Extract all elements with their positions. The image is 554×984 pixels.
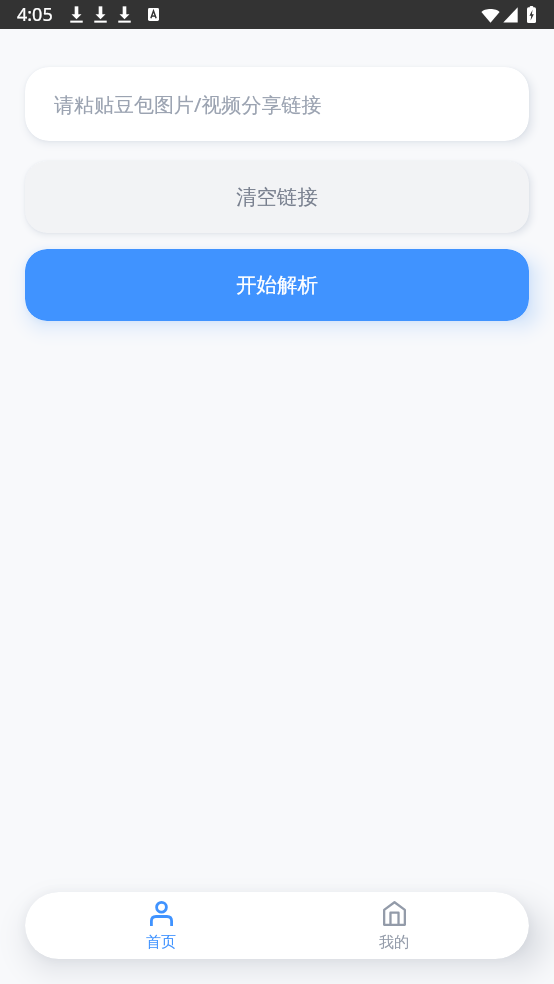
- staticText: 清空链接: [236, 184, 318, 210]
- staticText: 4:05: [17, 2, 53, 27]
- staticText: 请粘贴豆包图片/视频分享链接: [54, 91, 322, 118]
- button[interactable]: 请粘贴豆包图片/视频分享链接: [25, 67, 529, 141]
- button[interactable]: 清空链接: [25, 161, 529, 233]
- button[interactable]: 首页: [44, 892, 277, 959]
- button[interactable]: 开始解析: [25, 249, 529, 321]
- staticText: 我的: [379, 933, 409, 952]
- staticText: 首页: [146, 933, 176, 952]
- button[interactable]: 我的: [277, 892, 510, 959]
- staticText: 开始解析: [236, 272, 318, 298]
